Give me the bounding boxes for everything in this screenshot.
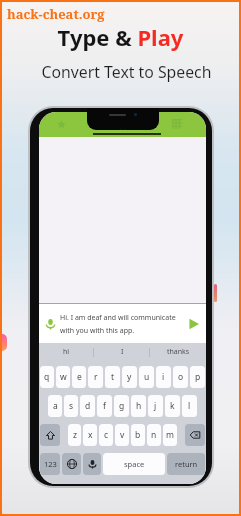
button[interactable]: u xyxy=(139,366,154,388)
staticText: g xyxy=(119,400,125,412)
staticText: o xyxy=(178,371,184,383)
button[interactable]: p xyxy=(190,366,205,388)
button[interactable]: h xyxy=(131,395,146,417)
button[interactable]: y xyxy=(122,366,137,388)
staticText: f xyxy=(103,400,106,412)
staticText: v xyxy=(120,429,125,441)
staticText: u xyxy=(144,371,150,383)
button[interactable]: Shift xyxy=(40,424,60,446)
staticText: y xyxy=(127,371,132,383)
staticText: i xyxy=(162,371,165,383)
staticText: d xyxy=(85,400,91,412)
staticText: hi xyxy=(63,347,70,357)
button[interactable]: e xyxy=(72,366,86,388)
staticText: m xyxy=(166,429,174,441)
button[interactable]: thanks xyxy=(150,343,206,361)
button[interactable]: a xyxy=(48,395,62,417)
button[interactable]: 123 xyxy=(40,453,60,475)
button[interactable]: Backspace xyxy=(185,424,205,446)
button[interactable]: v xyxy=(115,424,129,446)
button[interactable]: Favorites xyxy=(53,116,69,132)
staticText: q xyxy=(44,371,50,383)
button[interactable]: return xyxy=(167,453,205,475)
button[interactable]: Play xyxy=(186,316,202,332)
button[interactable]: f xyxy=(97,395,112,417)
button[interactable]: q xyxy=(40,366,54,388)
button[interactable]: g xyxy=(114,395,129,417)
staticText: k xyxy=(170,400,175,412)
staticText: w xyxy=(60,371,67,383)
staticText: j xyxy=(154,400,157,412)
button[interactable]: t xyxy=(105,366,120,388)
button[interactable]: Menu xyxy=(169,116,185,132)
button[interactable]: Emoji xyxy=(62,453,81,475)
button[interactable]: c xyxy=(99,424,113,446)
button[interactable]: l xyxy=(182,395,197,417)
button[interactable]: Voice input xyxy=(43,317,57,331)
button[interactable]: d xyxy=(80,395,95,417)
button[interactable]: i xyxy=(156,366,171,388)
button[interactable]: Dictation xyxy=(83,453,101,475)
staticText: b xyxy=(135,429,141,441)
staticText: thanks xyxy=(167,347,190,357)
staticText: z xyxy=(73,429,77,441)
staticText: s xyxy=(69,400,74,412)
staticText: x xyxy=(88,429,93,441)
staticText: e xyxy=(77,371,82,383)
button[interactable]: s xyxy=(64,395,78,417)
button[interactable]: j xyxy=(148,395,163,417)
staticText: 123 xyxy=(44,459,57,469)
button[interactable]: o xyxy=(173,366,188,388)
staticText: Type & Play xyxy=(0,22,241,52)
staticText: a xyxy=(53,400,58,412)
button[interactable]: k xyxy=(165,395,180,417)
button[interactable]: m xyxy=(163,424,177,446)
staticText: l xyxy=(188,400,191,412)
button[interactable]: I xyxy=(94,343,150,361)
staticText: hack-cheat.org xyxy=(7,5,105,23)
staticText: n xyxy=(151,429,157,441)
button[interactable]: b xyxy=(131,424,145,446)
staticText: h xyxy=(136,400,142,412)
staticText: I xyxy=(121,347,124,357)
staticText: c xyxy=(104,429,109,441)
button[interactable]: space xyxy=(103,453,165,475)
button[interactable]: n xyxy=(147,424,161,446)
staticText: return xyxy=(175,459,198,469)
button[interactable]: x xyxy=(83,424,97,446)
staticText: p xyxy=(195,371,201,383)
staticText: r xyxy=(94,371,98,383)
button[interactable]: w xyxy=(56,366,70,388)
staticText: t xyxy=(111,371,115,383)
button[interactable]: r xyxy=(88,366,103,388)
button[interactable]: hi xyxy=(39,343,94,361)
staticText: Hi. I am deaf and will communicate with … xyxy=(60,313,183,335)
staticText: Convert Text to Speech xyxy=(6,61,241,83)
staticText: space xyxy=(124,459,145,469)
button[interactable]: z xyxy=(68,424,81,446)
